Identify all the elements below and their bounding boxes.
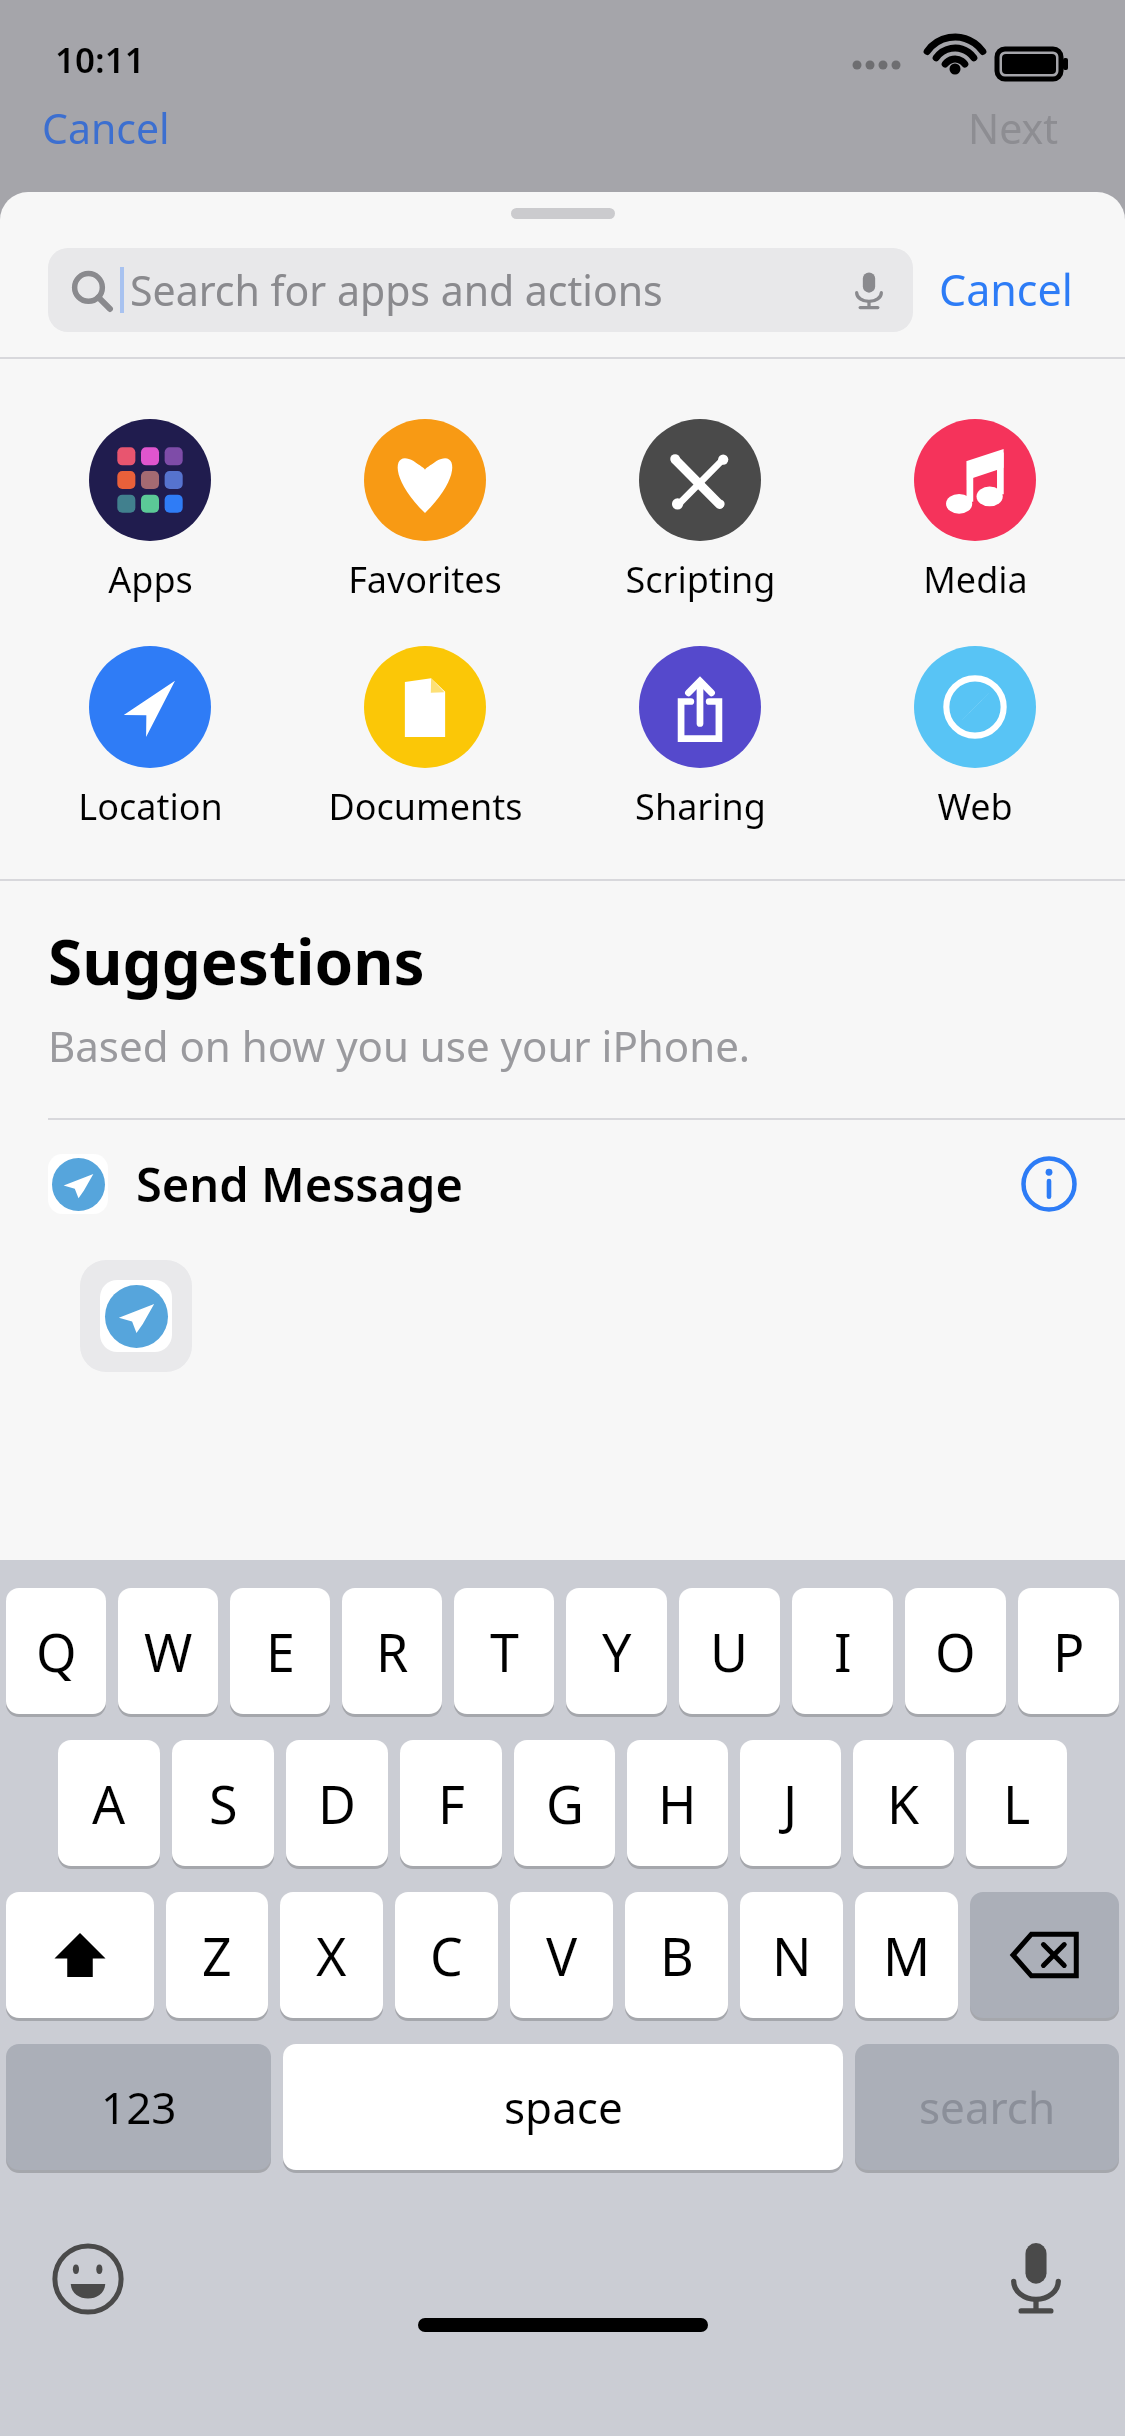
button[interactable]: Favorites <box>300 419 550 604</box>
staticText: P <box>1053 1616 1085 1687</box>
button[interactable]: F <box>400 1740 502 1866</box>
staticText: Cancel <box>42 100 170 156</box>
staticText: W <box>144 1616 193 1687</box>
button[interactable]: Scripting <box>575 419 825 604</box>
button[interactable]: Apps <box>25 419 275 604</box>
staticText: Favorites <box>348 555 502 604</box>
button[interactable]: Backspace <box>970 1892 1119 2018</box>
button[interactable]: Q <box>6 1588 106 1714</box>
staticText: Location <box>78 782 223 831</box>
button[interactable]: N <box>740 1892 843 2018</box>
staticText: L <box>1003 1768 1031 1839</box>
button[interactable]: O <box>905 1588 1006 1714</box>
button[interactable]: search <box>855 2044 1119 2170</box>
staticText: F <box>438 1768 465 1839</box>
staticText: V <box>546 1920 578 1991</box>
staticText: Send Message <box>136 1152 1021 1216</box>
staticText: U <box>710 1616 749 1687</box>
button[interactable]: space <box>283 2044 843 2170</box>
button[interactable]: K <box>853 1740 954 1866</box>
button[interactable]: H <box>627 1740 728 1866</box>
staticText: C <box>430 1920 463 1991</box>
button[interactable]: G <box>514 1740 615 1866</box>
staticText: Web <box>937 782 1013 831</box>
staticText: D <box>318 1768 356 1839</box>
button[interactable]: I <box>792 1588 893 1714</box>
staticText: O <box>935 1616 976 1687</box>
staticText: 123 <box>101 2077 177 2137</box>
staticText: Based on how you use your iPhone. <box>48 1017 751 1074</box>
staticText: S <box>209 1768 238 1839</box>
staticText: Sharing <box>635 782 766 831</box>
button[interactable]: 123 <box>6 2044 271 2170</box>
staticText: search <box>919 2077 1056 2137</box>
button[interactable]: E <box>230 1588 330 1714</box>
button[interactable]: Sharing <box>575 646 825 831</box>
button[interactable]: L <box>966 1740 1067 1866</box>
button[interactable]: P <box>1018 1588 1119 1714</box>
button[interactable]: D <box>286 1740 388 1866</box>
button[interactable]: Shift <box>6 1892 154 2018</box>
button[interactable]: A <box>58 1740 160 1866</box>
staticText: Suggestions <box>48 919 425 1003</box>
staticText: E <box>266 1616 295 1687</box>
button[interactable]: Cancel <box>913 252 1077 327</box>
button[interactable]: Search for apps and actions <box>48 248 913 332</box>
staticText: R <box>376 1616 409 1687</box>
button[interactable]: Emoji <box>52 2243 124 2315</box>
staticText: X <box>316 1920 347 1991</box>
button[interactable]: More info <box>1021 1156 1077 1212</box>
staticText: G <box>546 1768 584 1839</box>
staticText: Apps <box>108 555 193 604</box>
staticText: K <box>887 1768 920 1839</box>
button[interactable]: R <box>342 1588 442 1714</box>
button[interactable]: Location <box>25 646 275 831</box>
button[interactable]: C <box>395 1892 498 2018</box>
button[interactable]: V <box>510 1892 613 2018</box>
staticText: A <box>92 1768 126 1839</box>
staticText: M <box>883 1920 931 1991</box>
button[interactable]: Dictate <box>1005 2240 1067 2318</box>
staticText: Search for apps and actions <box>130 262 847 318</box>
button[interactable]: Media <box>850 419 1100 604</box>
staticText: B <box>660 1920 694 1991</box>
button[interactable]: B <box>625 1892 728 2018</box>
button[interactable]: M <box>855 1892 958 2018</box>
staticText: T <box>490 1616 519 1687</box>
staticText: Scripting <box>625 555 776 604</box>
button[interactable]: Dictate <box>847 268 891 312</box>
button[interactable]: T <box>454 1588 554 1714</box>
staticText: Next <box>968 100 1058 156</box>
staticText: Z <box>202 1920 232 1991</box>
staticText: Documents <box>328 782 523 831</box>
staticText: Q <box>36 1616 77 1687</box>
button[interactable]: Send Message <box>0 1120 1125 1248</box>
staticText: Media <box>923 555 1028 604</box>
staticText: Y <box>602 1616 632 1687</box>
staticText: Cancel <box>939 260 1073 319</box>
staticText: I <box>834 1616 852 1687</box>
button[interactable]: S <box>172 1740 274 1866</box>
button[interactable]: J <box>740 1740 841 1866</box>
button[interactable]: U <box>679 1588 780 1714</box>
staticText: N <box>772 1920 812 1991</box>
staticText: 10:11 <box>55 36 145 84</box>
button[interactable]: W <box>118 1588 218 1714</box>
button[interactable]: Y <box>566 1588 667 1714</box>
button[interactable]: Documents <box>300 646 550 831</box>
button[interactable]: Z <box>166 1892 268 2018</box>
button[interactable]: X <box>280 1892 383 2018</box>
staticText: J <box>783 1768 798 1839</box>
staticText: space <box>504 2077 623 2137</box>
staticText: H <box>658 1768 697 1839</box>
button[interactable]: Web <box>850 646 1100 831</box>
